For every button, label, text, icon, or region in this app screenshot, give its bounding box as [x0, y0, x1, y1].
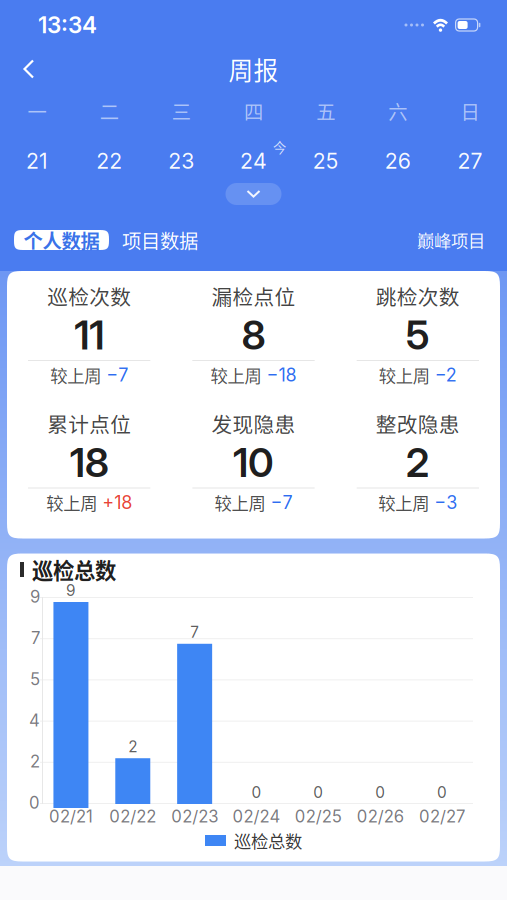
staticText: 较上周: [50, 362, 101, 388]
staticText: −2: [435, 364, 457, 386]
staticText: 24: [240, 148, 267, 174]
staticText: 02/26: [357, 806, 404, 827]
staticText: 巡检总数: [234, 828, 302, 853]
staticText: 0: [437, 783, 447, 802]
staticText: 2: [406, 438, 430, 487]
button[interactable]: 项目数据: [109, 230, 206, 250]
staticText: 较上周: [378, 490, 429, 515]
staticText: 巅峰项目: [417, 227, 485, 253]
staticText: 8: [241, 311, 265, 359]
staticText: 23: [168, 148, 194, 174]
staticText: 21: [26, 148, 48, 174]
staticText: −7: [270, 492, 292, 513]
staticText: 0: [251, 783, 261, 802]
button[interactable]: 25: [293, 141, 359, 181]
staticText: 项目数据: [122, 226, 198, 254]
button[interactable]: 22: [76, 141, 142, 181]
staticText: 今: [273, 137, 286, 157]
button[interactable]: 21: [4, 141, 70, 181]
staticText: 2: [30, 751, 40, 772]
staticText: 02/21: [49, 806, 93, 827]
staticText: 一: [28, 97, 47, 125]
button[interactable]: 26: [365, 141, 431, 181]
staticText: 0: [29, 793, 40, 813]
staticText: 02/23: [171, 806, 218, 827]
staticText: 9: [66, 581, 76, 600]
staticText: 5: [30, 669, 40, 689]
staticText: 较上周: [210, 362, 261, 388]
staticText: −7: [106, 364, 128, 386]
staticText: 0: [375, 783, 385, 802]
button[interactable]: 27: [437, 141, 503, 181]
staticText: 5: [406, 311, 430, 359]
staticText: 13:34: [38, 11, 97, 39]
staticText: 10: [233, 438, 274, 487]
staticText: 较上周: [214, 490, 265, 515]
button[interactable]: Expand calendar: [225, 183, 281, 205]
button[interactable]: 巅峰项目: [417, 230, 485, 250]
staticText: 巡检次数: [47, 281, 131, 311]
staticText: 四: [244, 97, 263, 125]
button[interactable]: 23: [148, 141, 214, 181]
staticText: 02/24: [232, 806, 280, 827]
button[interactable]: 24: [220, 141, 286, 181]
staticText: 7: [31, 628, 40, 648]
staticText: 周报: [228, 51, 278, 87]
staticText: 11: [74, 311, 104, 359]
staticText: 三: [172, 97, 191, 125]
staticText: 25: [313, 148, 339, 174]
staticText: 7: [190, 623, 199, 642]
staticText: 02/25: [295, 806, 342, 827]
staticText: 02/22: [109, 806, 156, 827]
staticText: 累计点位: [47, 408, 131, 438]
staticText: 较上周: [379, 362, 430, 388]
staticText: 日: [460, 97, 479, 125]
staticText: 2: [128, 737, 137, 756]
staticText: 漏检点位: [211, 281, 295, 311]
staticText: 整改隐患: [376, 408, 460, 438]
button[interactable]: Back: [0, 48, 52, 89]
staticText: 02/27: [419, 806, 465, 827]
staticText: 个人数据: [23, 226, 99, 254]
staticText: 巡检总数: [32, 554, 116, 585]
staticText: −3: [434, 492, 457, 513]
staticText: 发现隐患: [211, 408, 295, 438]
staticText: 二: [100, 97, 119, 125]
staticText: −18: [266, 364, 296, 386]
staticText: 五: [316, 97, 335, 125]
staticText: 18: [70, 438, 109, 487]
staticText: 9: [30, 587, 40, 607]
staticText: 跳检次数: [376, 281, 460, 311]
staticText: 22: [96, 148, 122, 174]
button[interactable]: 个人数据: [14, 230, 109, 250]
staticText: 0: [313, 783, 323, 802]
staticText: 六: [388, 97, 407, 125]
staticText: 4: [29, 710, 40, 730]
staticText: 较上周: [46, 490, 97, 515]
staticText: 27: [457, 148, 482, 174]
staticText: 26: [385, 148, 411, 174]
staticText: +18: [102, 492, 132, 513]
